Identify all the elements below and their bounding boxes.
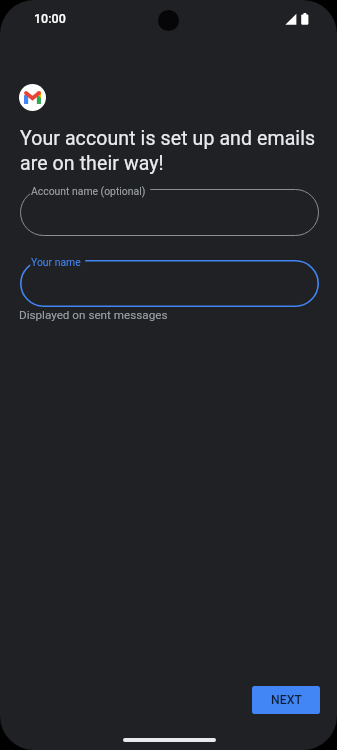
staticText: Your account is set up and emails are on… (20, 127, 316, 175)
staticText: Your name (31, 256, 81, 268)
staticText: NEXT (271, 693, 302, 707)
other: Gmail (19, 84, 46, 111)
button[interactable]: Account name (optional) (20, 189, 319, 236)
staticText: Displayed on sent messages (19, 308, 168, 322)
other: Signal and battery status (284, 13, 310, 26)
button[interactable]: Your name (20, 260, 319, 307)
staticText: Account name (optional) (31, 185, 146, 197)
button[interactable]: NEXT (252, 686, 320, 714)
staticText: 10:00 (34, 11, 66, 26)
